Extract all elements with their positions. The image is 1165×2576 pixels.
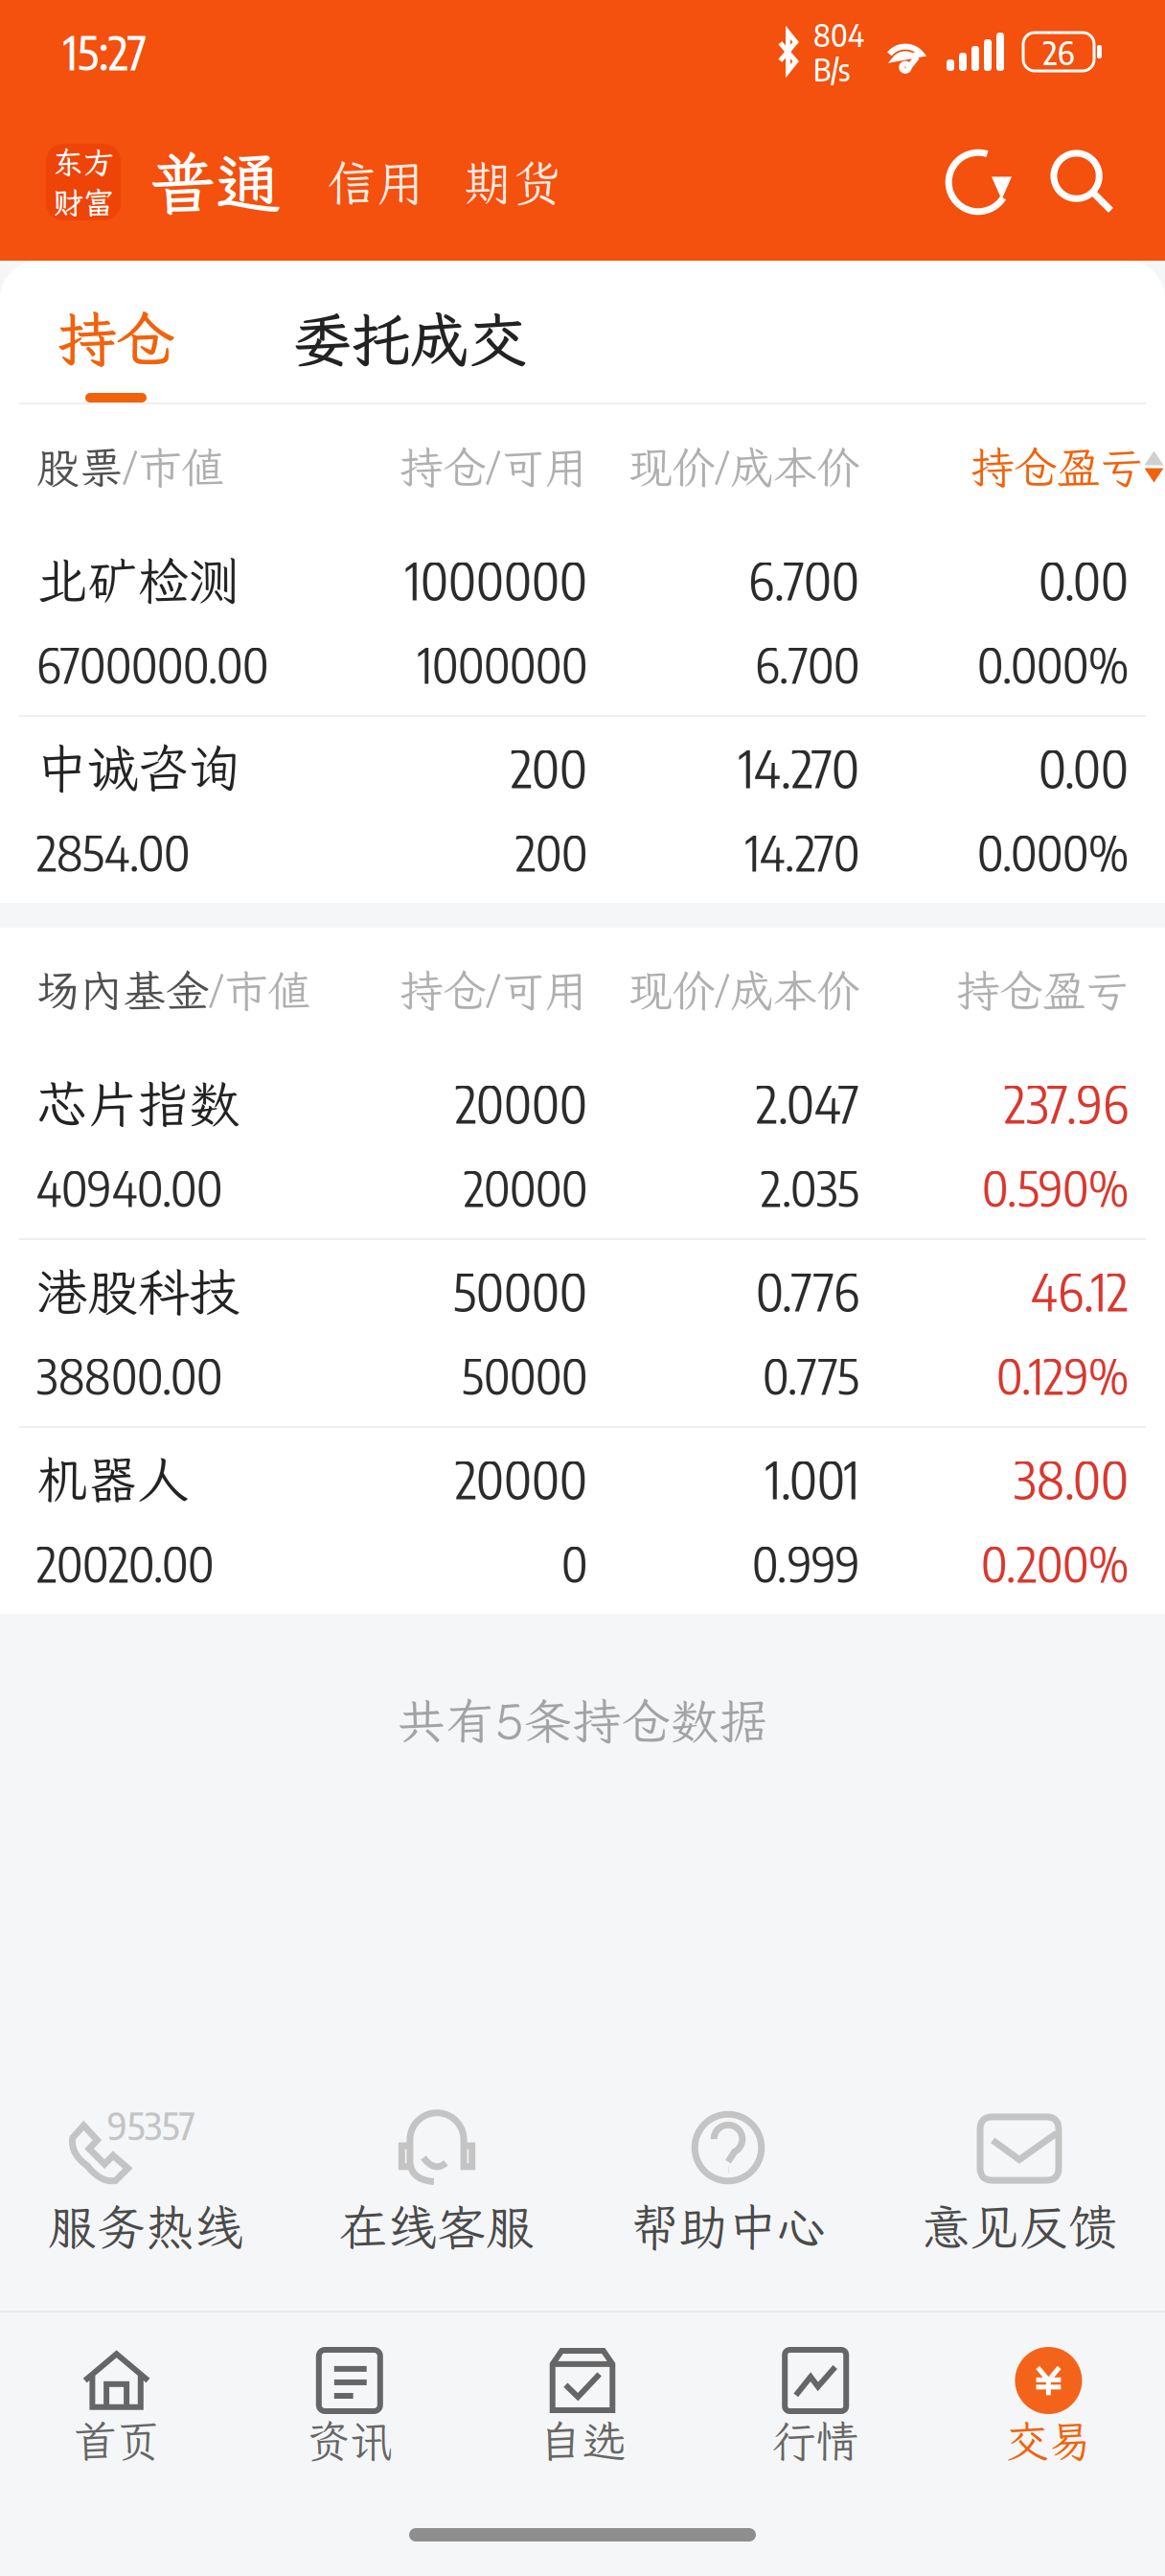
staticText: 237.96 xyxy=(1004,1071,1129,1135)
staticText: 期货 xyxy=(464,150,561,214)
staticText: 场内基金 xyxy=(36,961,209,1019)
staticText: 15:27 xyxy=(63,23,147,80)
staticText: 0.00 xyxy=(1039,736,1129,800)
staticText: 6700000.00 xyxy=(36,634,268,694)
staticText: 普通 xyxy=(149,138,282,226)
staticText: 38800.00 xyxy=(36,1345,222,1405)
button[interactable]: Search xyxy=(1012,151,1113,213)
button[interactable]: 港股科技 xyxy=(0,1240,1165,1426)
staticText: 14.270 xyxy=(739,736,859,800)
staticText: 6.700 xyxy=(755,634,859,694)
button[interactable]: 交易 xyxy=(932,2349,1165,2470)
button[interactable]: 意见反馈 xyxy=(874,2101,1165,2259)
staticText: 40940.00 xyxy=(36,1157,222,1218)
staticText: 0.776 xyxy=(756,1259,859,1323)
staticText: 200 xyxy=(511,736,587,800)
staticText: 在线客服 xyxy=(339,2195,535,2259)
button[interactable]: 首页 xyxy=(0,2349,233,2470)
staticText: 14.270 xyxy=(745,822,859,882)
staticText: 持仓/可用 xyxy=(400,438,587,495)
staticText: 1.001 xyxy=(765,1447,859,1511)
staticText: 首页 xyxy=(73,2412,160,2469)
staticText: 95357 xyxy=(107,2101,195,2149)
staticText: 持仓盈亏 xyxy=(956,961,1129,1019)
button[interactable]: 在线客服 xyxy=(291,2101,582,2259)
staticText: /市值 xyxy=(123,438,224,495)
staticText: 1000000 xyxy=(405,548,587,612)
staticText: 0.999 xyxy=(752,1533,859,1593)
button[interactable]: 资讯 xyxy=(233,2349,466,2470)
staticText: 0.000% xyxy=(977,634,1129,694)
staticText: 0.775 xyxy=(763,1345,859,1405)
staticText: 服务热线 xyxy=(48,2195,243,2259)
button[interactable]: 委托成交 xyxy=(178,261,527,402)
staticText: 现价/成本价 xyxy=(628,961,859,1019)
staticText: 0.00 xyxy=(1039,548,1129,612)
staticText: 自选 xyxy=(539,2412,626,2469)
staticText: 共有5条持仓数据 xyxy=(397,1689,768,1753)
staticText: 东方 xyxy=(53,142,114,182)
staticText: 北矿检测 xyxy=(36,546,240,613)
staticText: 1000000 xyxy=(418,634,587,694)
staticText: 交易 xyxy=(1005,2412,1092,2469)
staticText: 意见反馈 xyxy=(922,2195,1117,2259)
staticText: 2.047 xyxy=(756,1071,859,1135)
staticText: 股票 xyxy=(36,438,123,495)
button[interactable]: 95357 xyxy=(0,2101,291,2259)
staticText: 机器人 xyxy=(36,1445,189,1512)
staticText: 20000 xyxy=(464,1157,587,1218)
staticText: 港股科技 xyxy=(36,1257,240,1325)
staticText: 芯片指数 xyxy=(36,1069,240,1137)
staticText: 50000 xyxy=(453,1259,587,1323)
button[interactable]: 机器人 xyxy=(0,1428,1165,1614)
staticText: 委托成交 xyxy=(293,300,527,378)
staticText: 资讯 xyxy=(306,2412,393,2469)
staticText: 50000 xyxy=(462,1345,587,1405)
button[interactable]: 北矿检测 xyxy=(0,529,1165,715)
staticText: 46.12 xyxy=(1031,1259,1129,1323)
staticText: 2.035 xyxy=(761,1157,859,1218)
staticText: 20020.00 xyxy=(36,1533,214,1593)
staticText: 0.129% xyxy=(996,1345,1129,1405)
staticText: 持仓/可用 xyxy=(400,961,587,1019)
staticText: 0.000% xyxy=(977,822,1129,882)
staticText: 200 xyxy=(515,822,587,882)
staticText: 26 xyxy=(1043,31,1074,72)
staticText: 2854.00 xyxy=(36,822,190,882)
staticText: 0 xyxy=(561,1533,587,1593)
button[interactable]: 芯片指数 xyxy=(0,1052,1165,1238)
staticText: 0.590% xyxy=(982,1157,1129,1218)
staticText: 持仓 xyxy=(57,300,174,377)
staticText: 持仓盈亏 xyxy=(971,438,1143,495)
staticText: 6.700 xyxy=(748,548,859,612)
staticText: 信用 xyxy=(328,150,425,214)
button[interactable]: 帮助中心 xyxy=(582,2101,874,2259)
staticText: 20000 xyxy=(455,1071,587,1135)
staticText: B/s xyxy=(813,50,850,88)
button[interactable]: 持仓 xyxy=(54,261,178,402)
staticText: 20000 xyxy=(455,1447,587,1511)
staticText: 0.200% xyxy=(981,1533,1129,1593)
staticText: 804 xyxy=(813,15,864,54)
staticText: 帮助中心 xyxy=(630,2195,826,2259)
staticText: 38.00 xyxy=(1014,1447,1129,1511)
staticText: /市值 xyxy=(209,961,310,1019)
button[interactable]: 行情 xyxy=(699,2349,932,2470)
staticText: 行情 xyxy=(772,2412,859,2469)
button[interactable]: 自选 xyxy=(466,2349,699,2470)
button[interactable]: 中诚咨询 xyxy=(0,717,1165,903)
staticText: 现价/成本价 xyxy=(628,438,859,495)
button[interactable]: Refresh xyxy=(945,149,1012,216)
staticText: 财富 xyxy=(53,182,114,222)
staticText: 中诚咨询 xyxy=(36,734,240,801)
